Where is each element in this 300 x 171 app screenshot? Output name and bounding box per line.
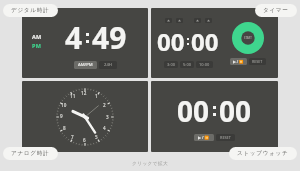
- staticText: START: [244, 36, 252, 40]
- staticText: ▶ / ⏸: [233, 59, 244, 64]
- staticText: 3: [106, 114, 109, 120]
- staticText: 10: [61, 102, 67, 108]
- button[interactable]: 5:00: [180, 61, 194, 68]
- staticText: ストップウォッチ: [237, 150, 289, 157]
- staticText: 4: [103, 125, 106, 131]
- button[interactable]: Increase: [176, 18, 183, 23]
- button[interactable]: タイマー: [255, 4, 297, 17]
- button[interactable]: ストップウォッチ: [229, 147, 297, 160]
- button[interactable]: 10:00: [196, 61, 213, 68]
- staticText: 6: [83, 137, 86, 143]
- button[interactable]: 12: [22, 81, 148, 152]
- button[interactable]: ▶ / ⏸: [194, 134, 214, 141]
- staticText: 49: [92, 17, 127, 58]
- staticText: 12: [81, 90, 87, 96]
- staticText: タイマー: [263, 7, 289, 14]
- staticText: 8: [63, 125, 66, 131]
- staticText: AM/PM: [78, 62, 93, 68]
- button[interactable]: Increase: [194, 18, 201, 23]
- staticText: 5:00: [183, 62, 191, 67]
- staticText: 3:00: [167, 62, 175, 67]
- button[interactable]: Increase: [165, 18, 172, 23]
- staticText: 2: [103, 102, 106, 108]
- staticText: ▶ / ⏸: [198, 135, 210, 140]
- staticText: 10:00: [199, 62, 210, 67]
- button[interactable]: 3:00: [164, 61, 178, 68]
- staticText: 00: [219, 92, 252, 130]
- staticText: アナログ時計: [11, 150, 50, 157]
- staticText: デジタル時計: [11, 7, 50, 14]
- button[interactable]: Increase: [151, 8, 278, 78]
- button[interactable]: 00: [151, 81, 278, 152]
- button[interactable]: AM/PM: [74, 61, 97, 69]
- staticText: 9: [60, 113, 63, 119]
- staticText: クリックで拡大: [132, 161, 169, 167]
- staticText: 24H: [104, 62, 112, 68]
- staticText: PM: [32, 42, 42, 49]
- button[interactable]: 24H: [99, 61, 117, 69]
- staticText: RESET: [220, 135, 231, 140]
- button[interactable]: RESET: [216, 134, 235, 141]
- staticText: RESET: [252, 59, 263, 64]
- staticText: 00: [177, 92, 210, 130]
- button[interactable]: RESET: [249, 58, 266, 65]
- button[interactable]: アナログ時計: [3, 147, 58, 160]
- staticText: 4: [65, 17, 83, 58]
- button[interactable]: Increase: [205, 18, 212, 23]
- button[interactable]: AM: [22, 8, 148, 78]
- button[interactable]: ▶ / ⏸: [230, 58, 247, 65]
- staticText: 11: [70, 93, 76, 99]
- staticText: 5: [95, 134, 98, 140]
- staticText: AM: [32, 33, 42, 40]
- staticText: 00: [191, 25, 219, 58]
- button[interactable]: Start timer: [232, 22, 264, 54]
- button[interactable]: デジタル時計: [3, 4, 58, 17]
- staticText: 7: [71, 134, 74, 140]
- staticText: 00: [157, 25, 185, 58]
- staticText: 1: [95, 93, 98, 99]
